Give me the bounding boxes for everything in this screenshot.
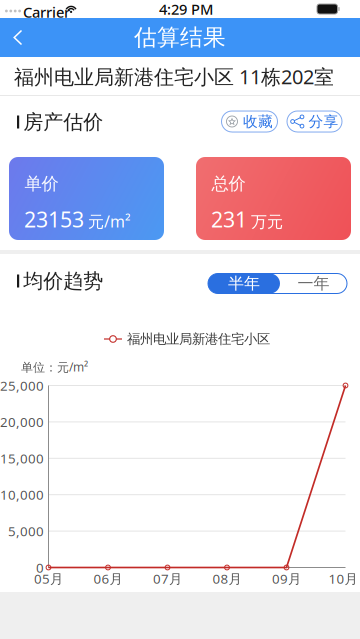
staticText: 一年 [297,274,329,293]
staticText: 总价 [211,173,245,194]
button[interactable]: 一年 [280,273,347,293]
staticText: 估算结果 [134,24,226,51]
staticText: 半年 [228,274,260,293]
staticText: 09月 [272,570,301,587]
staticText: 房产估价 [23,110,103,134]
staticText: 10月 [328,570,357,587]
staticText: 08月 [212,570,241,587]
button[interactable]: 分享 [287,111,342,132]
staticText: 均价趋势 [23,269,103,293]
staticText: Carrier [23,2,70,22]
staticText: 231 [211,205,247,233]
staticText: 23153 [24,205,84,233]
staticText: 收藏 [243,112,273,130]
staticText: 单价 [24,173,58,194]
staticText: 06月 [93,570,122,587]
staticText: 25,000 [0,377,44,394]
staticText: 福州电业局新港住宅小区 [127,331,270,347]
staticText: 5,000 [8,522,44,540]
staticText: 福州电业局新港住宅小区 11栋202室 [14,63,334,90]
staticText: 15,000 [0,449,44,467]
staticText: 20,000 [0,413,44,431]
staticText: 分享 [308,112,338,130]
staticText: 单位：元/m² [21,359,88,375]
button[interactable]: 半年 [208,273,280,293]
button[interactable]: 收藏 [221,111,277,132]
staticText: 05月 [34,570,63,587]
staticText: 07月 [153,570,182,587]
staticText: 万元 [251,212,283,232]
button[interactable]: Back [0,18,36,57]
staticText: 4:29 PM [159,0,213,19]
staticText: 10,000 [0,486,44,503]
staticText: 0 [36,559,44,576]
staticText: 元/m² [88,211,131,232]
